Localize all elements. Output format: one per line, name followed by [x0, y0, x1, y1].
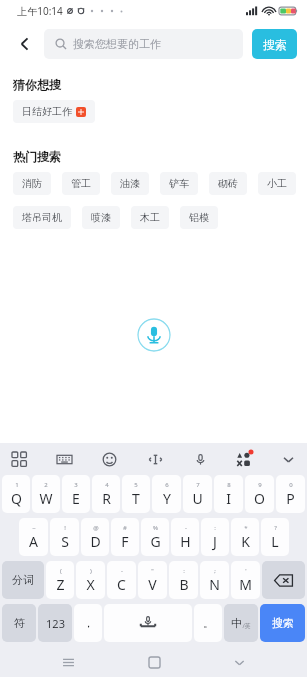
button[interactable]: Text cursor [144, 448, 166, 470]
staticText: 管工 [71, 177, 91, 190]
button[interactable]: 搜索 [260, 604, 305, 642]
button[interactable]: Recent apps [50, 647, 86, 677]
button[interactable]: * [231, 518, 259, 556]
staticText: 6 [165, 481, 169, 489]
button[interactable]: 搜索您想要的工作 [44, 29, 243, 59]
button[interactable]: 分词 [2, 561, 44, 599]
staticText: W [39, 489, 53, 508]
button[interactable]: ~ [19, 518, 48, 556]
staticText: I [226, 489, 231, 508]
button[interactable]: ( [46, 561, 74, 599]
staticText: D [90, 532, 101, 551]
staticText: A [29, 532, 38, 551]
button[interactable]: 符 [2, 604, 36, 642]
button[interactable]: 123 [38, 604, 72, 642]
button[interactable]: " [138, 561, 167, 599]
button[interactable]: @ [81, 518, 109, 556]
staticText: @ [93, 524, 99, 532]
staticText: 5 [134, 481, 138, 489]
staticText: Z [56, 575, 65, 594]
staticText: % [153, 524, 158, 532]
button[interactable]: Stickers [234, 449, 254, 469]
button[interactable]: 2 [32, 475, 60, 513]
button[interactable]: Apps [8, 448, 30, 470]
button[interactable]: Emoji [98, 448, 120, 470]
button[interactable]: ， [74, 604, 102, 642]
button[interactable]: 3 [62, 475, 90, 513]
button[interactable]: - [171, 518, 199, 556]
button[interactable]: Voice input [189, 448, 211, 470]
button[interactable]: : [201, 518, 229, 556]
staticText: M [239, 575, 252, 594]
button[interactable]: 搜索 [252, 29, 297, 59]
button[interactable]: 木工 [131, 206, 169, 229]
button[interactable]: ; [200, 561, 229, 599]
button[interactable]: Home [136, 647, 172, 677]
staticText: Y [163, 489, 171, 508]
button[interactable]: 0 [276, 475, 305, 513]
button[interactable]: # [111, 518, 139, 556]
staticText: 消防 [22, 177, 42, 190]
button[interactable]: 4 [92, 475, 120, 513]
button[interactable]: Collapse keyboard [277, 448, 299, 470]
staticText: Q [11, 489, 22, 508]
staticText: O [254, 489, 265, 508]
button[interactable]: 小工 [258, 172, 296, 195]
button[interactable]: 7 [183, 475, 212, 513]
button[interactable]: 6 [152, 475, 181, 513]
button[interactable]: 喷漆 [82, 206, 120, 229]
staticText: P [286, 489, 295, 508]
staticText: 猜你想搜 [13, 77, 61, 92]
staticText: /英 [242, 622, 251, 630]
staticText: 8 [227, 481, 231, 489]
staticText: ~ [32, 524, 36, 532]
button[interactable]: ? [261, 518, 289, 556]
button[interactable]: 5 [122, 475, 150, 513]
button[interactable]: Back [10, 29, 40, 59]
staticText: ' [245, 567, 247, 575]
staticText: T [132, 489, 140, 508]
button[interactable]: 8 [214, 475, 243, 513]
staticText: L [271, 532, 279, 551]
staticText: 小工 [267, 177, 287, 190]
button[interactable]: Keyboard [53, 448, 75, 470]
staticText: 上午10:14 [17, 4, 63, 18]
button[interactable]: Backspace [262, 561, 305, 599]
button[interactable]: Voice search [137, 318, 171, 352]
button[interactable]: ) [76, 561, 105, 599]
staticText: 123 [46, 616, 65, 631]
button[interactable]: 日结好工作 [13, 100, 95, 123]
staticText: B [179, 575, 189, 594]
button[interactable]: % [141, 518, 169, 556]
button[interactable]: 1 [2, 475, 30, 513]
button[interactable]: 铲车 [160, 172, 198, 195]
staticText: 塔吊司机 [22, 211, 62, 224]
staticText: ; [214, 567, 216, 575]
staticText: S [61, 532, 69, 551]
staticText: 热门搜索 [13, 149, 61, 164]
button[interactable]: 砌砖 [209, 172, 247, 195]
button[interactable]: ! [50, 518, 79, 556]
staticText: 砌砖 [218, 177, 238, 190]
staticText: 4 [105, 481, 109, 489]
button[interactable]: 塔吊司机 [13, 206, 71, 229]
staticText: E [72, 489, 80, 508]
button[interactable]: 中 [224, 604, 258, 642]
staticText: : [183, 567, 185, 575]
staticText: 搜索您想要的工作 [73, 37, 161, 51]
button[interactable]: - [107, 561, 136, 599]
button[interactable]: Back [221, 647, 257, 677]
button[interactable]: Space [104, 604, 192, 642]
staticText: 搜索 [272, 616, 294, 630]
button[interactable]: 管工 [62, 172, 100, 195]
staticText: 木工 [140, 211, 160, 224]
button[interactable]: 。 [194, 604, 222, 642]
button[interactable]: 9 [245, 475, 274, 513]
button[interactable]: ' [231, 561, 260, 599]
button[interactable]: 消防 [13, 172, 51, 195]
staticText: - [121, 567, 123, 575]
button[interactable]: 铝模 [180, 206, 218, 229]
staticText: * [244, 524, 248, 532]
button[interactable]: 油漆 [111, 172, 149, 195]
button[interactable]: : [169, 561, 198, 599]
